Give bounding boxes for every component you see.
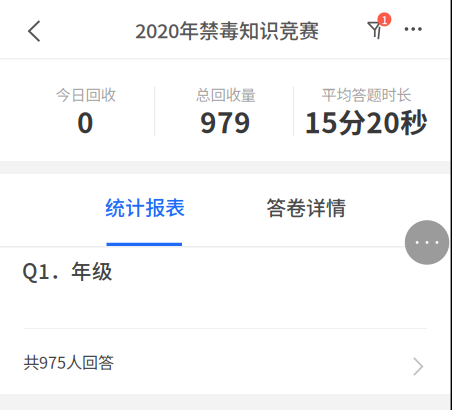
button[interactable]: Filter: [356, 6, 396, 50]
staticText: 共975人回答: [23, 350, 114, 373]
button[interactable]: More: [396, 11, 432, 47]
staticText: 今日回收: [55, 83, 115, 105]
staticText: 2020年禁毒知识竞赛: [135, 15, 319, 44]
staticText: Q1．年级: [22, 255, 113, 285]
button[interactable]: Back: [16, 9, 56, 49]
button[interactable]: 统计报表: [96, 180, 194, 246]
staticText: 0: [77, 101, 94, 141]
staticText: 平均答题时长: [321, 83, 411, 105]
button[interactable]: More actions: [405, 220, 449, 265]
staticText: 总回收量: [195, 83, 255, 105]
staticText: 979: [200, 101, 251, 141]
staticText: 1: [381, 11, 387, 27]
button[interactable]: 答卷详情: [257, 180, 355, 246]
staticText: 15分20秒: [304, 101, 428, 141]
staticText: 统计报表: [105, 192, 185, 221]
staticText: 答卷详情: [266, 192, 346, 221]
button[interactable]: 共975人回答: [0, 329, 452, 394]
